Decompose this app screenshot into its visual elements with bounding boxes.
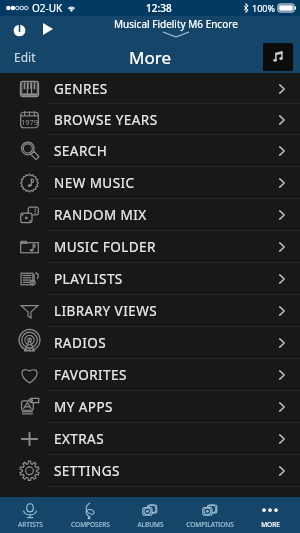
button[interactable]: MY APPS — [0, 391, 300, 423]
staticText: MUSIC FOLDER — [54, 238, 156, 256]
button[interactable]: Now playing artwork — [263, 43, 293, 71]
button[interactable]: LIBRARY VIEWS — [0, 295, 300, 327]
button[interactable]: EXTRAS — [0, 423, 300, 455]
staticText: Musical Fidelity M6 Encore — [114, 17, 238, 31]
staticText: SETTINGS — [54, 462, 120, 480]
button[interactable]: ALBUMS — [120, 497, 180, 533]
button[interactable]: MUSIC FOLDER — [0, 231, 300, 263]
staticText: RANDOM MIX — [54, 206, 147, 224]
button[interactable]: MORE — [240, 497, 300, 533]
staticText: BROWSE YEARS — [54, 111, 158, 129]
button[interactable]: COMPILATIONS — [180, 497, 240, 533]
staticText: MORE — [261, 520, 280, 529]
staticText: FAVORITES — [54, 366, 127, 384]
staticText: ALBUMS — [137, 520, 164, 529]
button[interactable]: Play — [38, 19, 58, 39]
button[interactable]: RANDOM MIX — [0, 199, 300, 231]
staticText: NEW MUSIC — [54, 174, 135, 192]
button[interactable]: SEARCH — [0, 135, 300, 167]
staticText: COMPILATIONS — [186, 520, 234, 529]
staticText: EXTRAS — [54, 430, 105, 448]
staticText: LIBRARY VIEWS — [54, 302, 157, 320]
staticText: 12:38 — [146, 1, 172, 15]
staticText: ARTISTS — [18, 520, 43, 529]
staticText: 100% — [252, 2, 275, 14]
button[interactable]: FAVORITES — [0, 359, 300, 391]
staticText: RADIOS — [54, 334, 107, 352]
button[interactable]: Power — [9, 19, 29, 39]
staticText: O2-UK — [32, 1, 63, 15]
button[interactable]: Edit — [0, 41, 46, 73]
staticText: More — [129, 46, 171, 69]
staticText: PLAYLISTS — [54, 270, 123, 288]
staticText: GENRES — [54, 80, 108, 98]
button[interactable]: RADIOS — [0, 327, 300, 359]
button[interactable]: NEW MUSIC — [0, 167, 300, 199]
button[interactable]: COMPOSERS — [60, 497, 120, 533]
button[interactable]: 1979 — [0, 104, 300, 135]
staticText: MY APPS — [54, 398, 113, 416]
staticText: 1979 — [21, 117, 39, 127]
button[interactable]: ARTISTS — [0, 497, 60, 533]
staticText: Edit — [14, 49, 36, 65]
button[interactable]: PLAYLISTS — [0, 263, 300, 295]
button[interactable]: SETTINGS — [0, 455, 300, 487]
button[interactable]: GENRES — [0, 73, 300, 104]
staticText: COMPOSERS — [71, 520, 110, 529]
staticText: SEARCH — [54, 142, 108, 160]
